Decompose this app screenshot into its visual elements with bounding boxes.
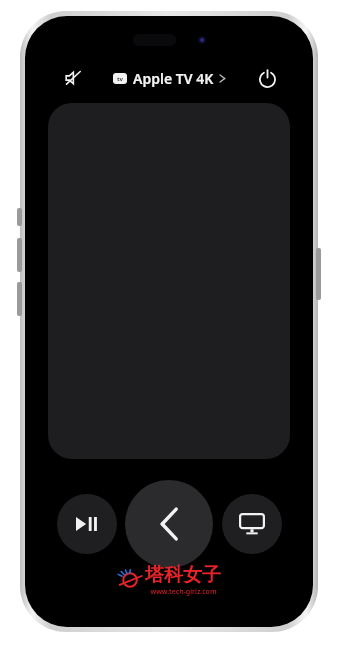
staticText: Apple TV 4K	[133, 69, 214, 88]
button[interactable]: TV Home	[222, 494, 282, 554]
button[interactable]: tv	[109, 65, 230, 92]
staticText: www.tech-girlz.com	[150, 587, 217, 597]
staticText: tv	[117, 75, 124, 83]
button[interactable]: Back	[125, 480, 213, 568]
button[interactable]: Power	[249, 60, 285, 96]
button[interactable]: Play or Pause	[57, 494, 117, 554]
button[interactable]: Mute	[55, 60, 91, 96]
staticText: 塔科女子	[145, 563, 221, 587]
